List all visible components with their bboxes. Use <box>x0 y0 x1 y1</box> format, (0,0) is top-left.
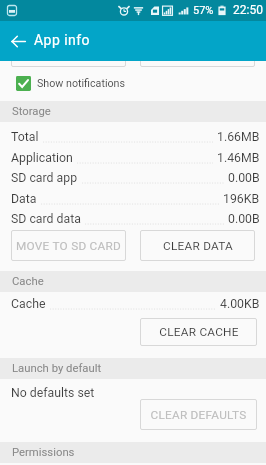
button[interactable]: CLEAR CACHE <box>140 318 257 346</box>
staticText: Launch by default <box>12 362 102 375</box>
button[interactable]: CLEAR DEFAULTS <box>140 399 257 430</box>
button[interactable] <box>11 36 126 67</box>
button[interactable]: Application <box>0 147 266 168</box>
staticText: 1.46MB <box>217 151 260 165</box>
staticText: Cache <box>11 297 46 311</box>
button[interactable]: SD card data <box>0 208 266 229</box>
staticText: Show notifications <box>37 77 126 90</box>
staticText: Data <box>11 192 37 206</box>
button[interactable] <box>140 36 255 67</box>
staticText: 196KB <box>223 192 260 206</box>
button[interactable]: Navigate up <box>0 23 36 59</box>
staticText: MOVE TO SD CARD <box>16 239 121 253</box>
button[interactable]: MOVE TO SD CARD <box>11 230 126 261</box>
staticText: Application <box>11 151 73 165</box>
staticText: CLEAR CACHE <box>159 325 239 339</box>
staticText: 57% <box>193 4 214 17</box>
button[interactable]: Total <box>0 126 266 147</box>
staticText: Total <box>11 130 39 144</box>
staticText: 4.00KB <box>220 297 260 311</box>
staticText: Storage <box>12 105 51 118</box>
button[interactable]: Show notifications <box>0 71 266 95</box>
staticText: 0.00B <box>228 212 260 226</box>
staticText: 22:50 <box>233 3 263 17</box>
staticText: SD card app <box>11 171 78 185</box>
staticText: 0.00B <box>228 171 260 185</box>
staticText: SD card data <box>11 212 81 226</box>
staticText: App info <box>34 32 90 48</box>
button[interactable]: CLEAR DATA <box>140 230 255 261</box>
staticText: No defaults set <box>11 386 95 400</box>
button[interactable]: Data <box>0 188 266 209</box>
button[interactable]: SD card app <box>0 167 266 188</box>
staticText: CLEAR DEFAULTS <box>150 408 247 422</box>
staticText: Cache <box>12 275 44 288</box>
staticText: Permissions <box>12 446 75 459</box>
staticText: CLEAR DATA <box>163 239 233 253</box>
staticText: 1.66MB <box>217 130 260 144</box>
button[interactable]: Cache <box>0 293 266 314</box>
